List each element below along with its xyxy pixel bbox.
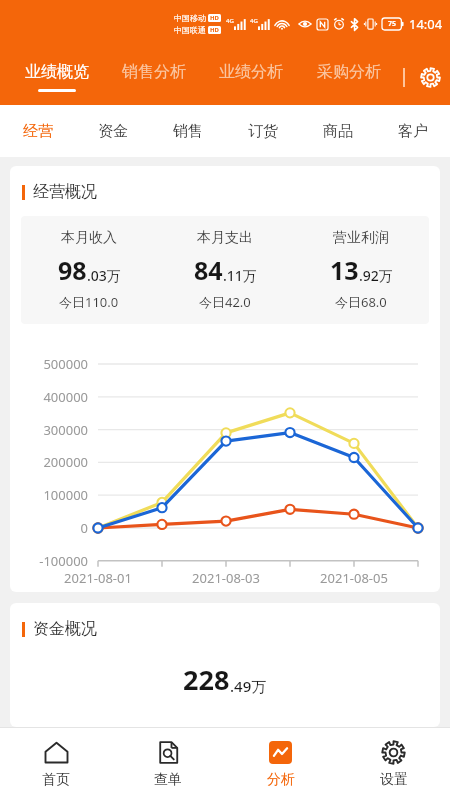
button[interactable]: 查单 xyxy=(112,728,224,800)
button[interactable]: 采购分析 xyxy=(300,48,398,105)
staticText: 分析 xyxy=(267,771,295,789)
staticText: 经营 xyxy=(23,122,53,141)
staticText: 4G xyxy=(226,17,234,25)
staticText: 今日68.0 xyxy=(335,293,387,311)
staticText: 首页 xyxy=(42,771,70,789)
staticText: 中国联通 xyxy=(174,25,206,35)
staticText: 营业利润 xyxy=(333,229,389,247)
staticText: 500000 xyxy=(10,355,88,373)
staticText: .11万 xyxy=(223,266,257,285)
button[interactable]: 资金 xyxy=(75,105,150,157)
staticText: 查单 xyxy=(154,771,182,789)
staticText: 300000 xyxy=(10,421,88,439)
button[interactable]: 客户 xyxy=(375,105,450,157)
staticText: 采购分析 xyxy=(317,62,381,82)
staticText: 2021-08-01 xyxy=(53,569,143,587)
button[interactable]: 订货 xyxy=(225,105,300,157)
staticText: 今日110.0 xyxy=(59,293,119,311)
staticText: 13 xyxy=(330,253,359,287)
staticText: 0 xyxy=(10,519,88,537)
button[interactable]: 经营 xyxy=(0,105,75,157)
staticText: 400000 xyxy=(10,388,88,406)
staticText: 业绩分析 xyxy=(219,62,283,82)
button[interactable]: 首页 xyxy=(0,728,112,800)
staticText: 客户 xyxy=(398,122,428,141)
staticText: 资金概况 xyxy=(33,619,97,639)
staticText: 2021-08-03 xyxy=(181,569,271,587)
staticText: HD xyxy=(210,26,219,34)
staticText: 98 xyxy=(58,253,87,287)
staticText: 2021-08-05 xyxy=(309,569,399,587)
button[interactable]: 商品 xyxy=(300,105,375,157)
staticText: 订货 xyxy=(248,122,278,141)
staticText: 销售分析 xyxy=(122,62,186,82)
button[interactable]: 分析 xyxy=(224,728,337,800)
staticText: 业绩概览 xyxy=(25,62,89,82)
button[interactable]: 设置 xyxy=(337,728,450,800)
staticText: 本月收入 xyxy=(61,229,117,247)
staticText: 设置 xyxy=(380,771,408,789)
staticText: 14:04 xyxy=(409,15,443,33)
button[interactable]: Settings xyxy=(415,62,445,92)
staticText: 100000 xyxy=(10,486,88,504)
staticText: 200000 xyxy=(10,453,88,471)
staticText: 中国移动 xyxy=(174,13,206,23)
staticText: 228 xyxy=(183,661,230,698)
staticText: 4G xyxy=(250,17,258,25)
staticText: 84 xyxy=(194,253,223,287)
staticText: 75 xyxy=(388,19,397,29)
staticText: .49万 xyxy=(230,676,267,696)
button[interactable]: 销售分析 xyxy=(105,48,202,105)
button[interactable]: 业绩概览 xyxy=(8,48,105,105)
staticText: 经营概况 xyxy=(33,182,97,202)
staticText: HD xyxy=(210,14,219,22)
staticText: 今日42.0 xyxy=(199,293,251,311)
staticText: .92万 xyxy=(359,266,393,285)
button[interactable]: 业绩分析 xyxy=(202,48,300,105)
staticText: .03万 xyxy=(87,266,121,285)
staticText: 资金 xyxy=(98,122,128,141)
staticText: 销售 xyxy=(173,122,203,141)
staticText: 商品 xyxy=(323,122,353,141)
staticText: -100000 xyxy=(10,552,88,570)
staticText: 本月支出 xyxy=(197,229,253,247)
button[interactable]: 销售 xyxy=(150,105,225,157)
